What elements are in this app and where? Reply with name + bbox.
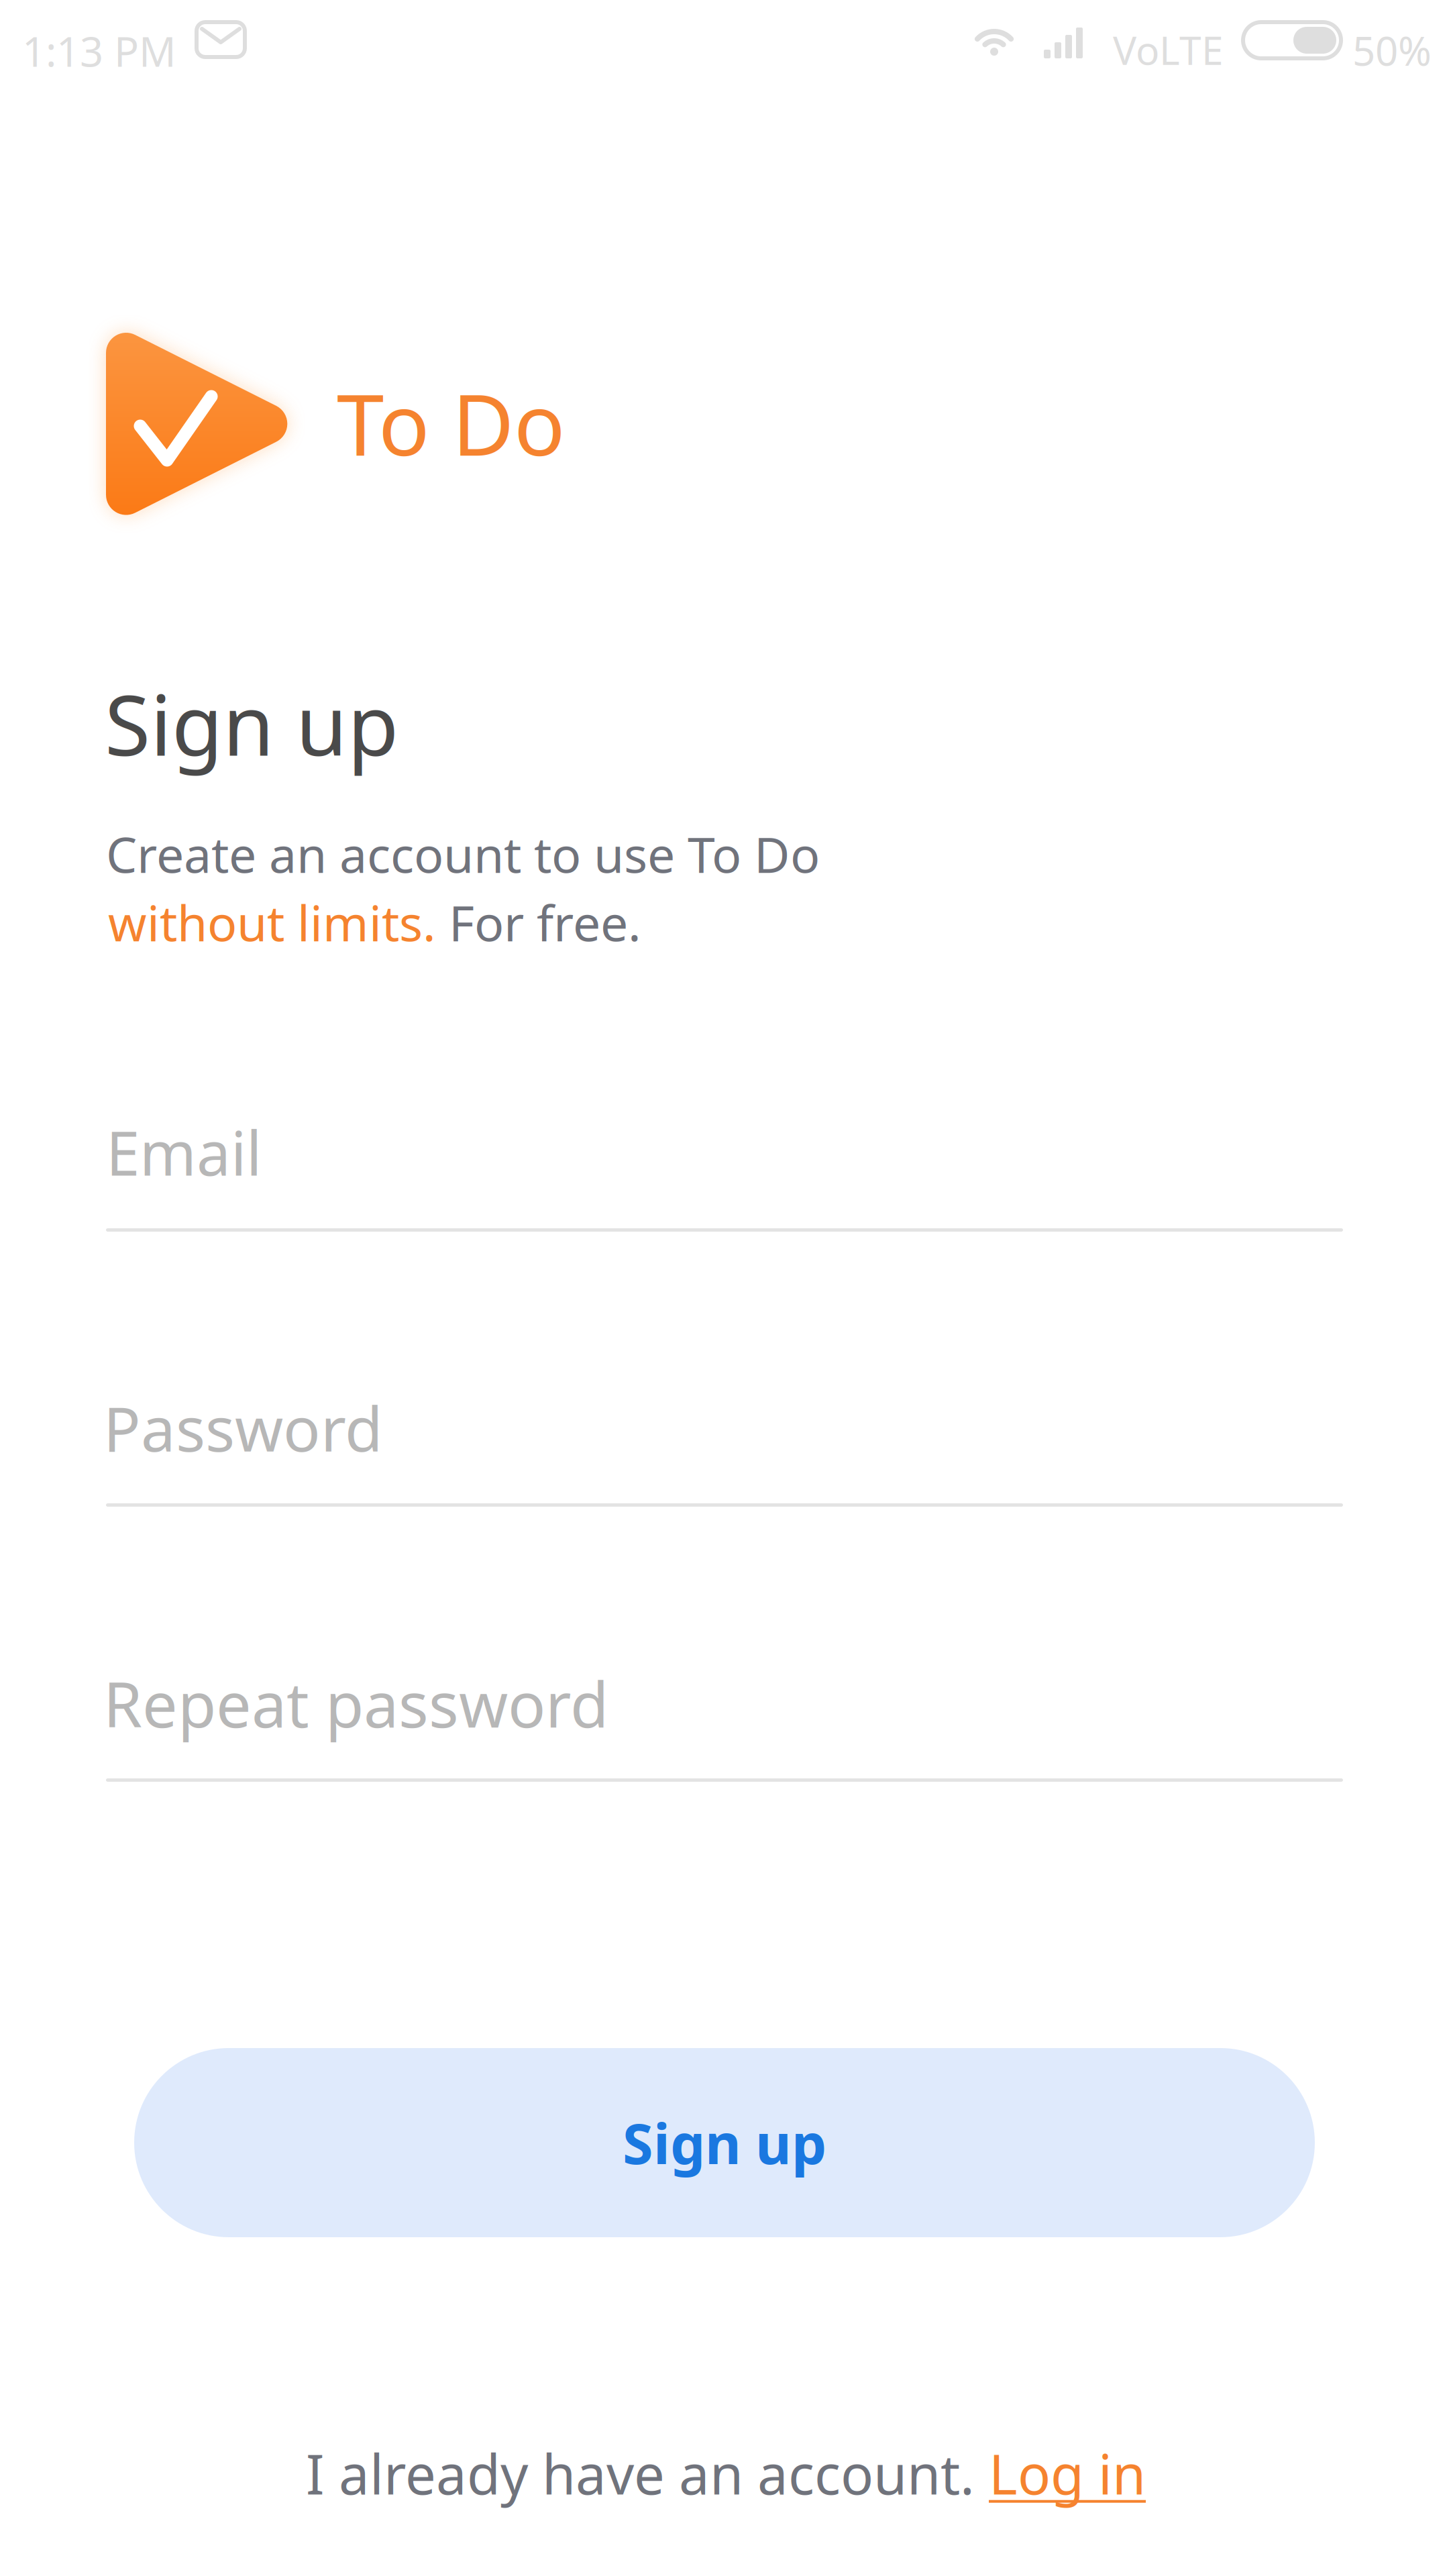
staticText: Sign up — [623, 2106, 826, 2179]
staticText: Log in — [989, 2437, 1146, 2510]
button[interactable]: Log in — [989, 2437, 1146, 2510]
button[interactable]: Repeat password — [106, 1662, 1343, 1796]
button[interactable]: Email — [106, 1112, 1343, 1246]
staticText: VoLTE — [1113, 23, 1224, 76]
staticText: 1:13 PM — [22, 23, 176, 78]
staticText: Repeat password — [103, 1662, 608, 1745]
staticText: For free. — [436, 890, 641, 955]
staticText: without limits. — [108, 890, 436, 955]
staticText: I already have an account. — [306, 2437, 989, 2510]
staticText: Sign up — [105, 668, 398, 779]
button[interactable]: Password — [106, 1387, 1343, 1521]
staticText: Password — [103, 1387, 383, 1469]
staticText: Email — [106, 1112, 262, 1192]
staticText: Create an account to use To Do — [106, 821, 820, 886]
button[interactable]: Sign up — [134, 2048, 1315, 2237]
staticText: To Do — [337, 366, 566, 479]
staticText: 50% — [1352, 23, 1432, 77]
